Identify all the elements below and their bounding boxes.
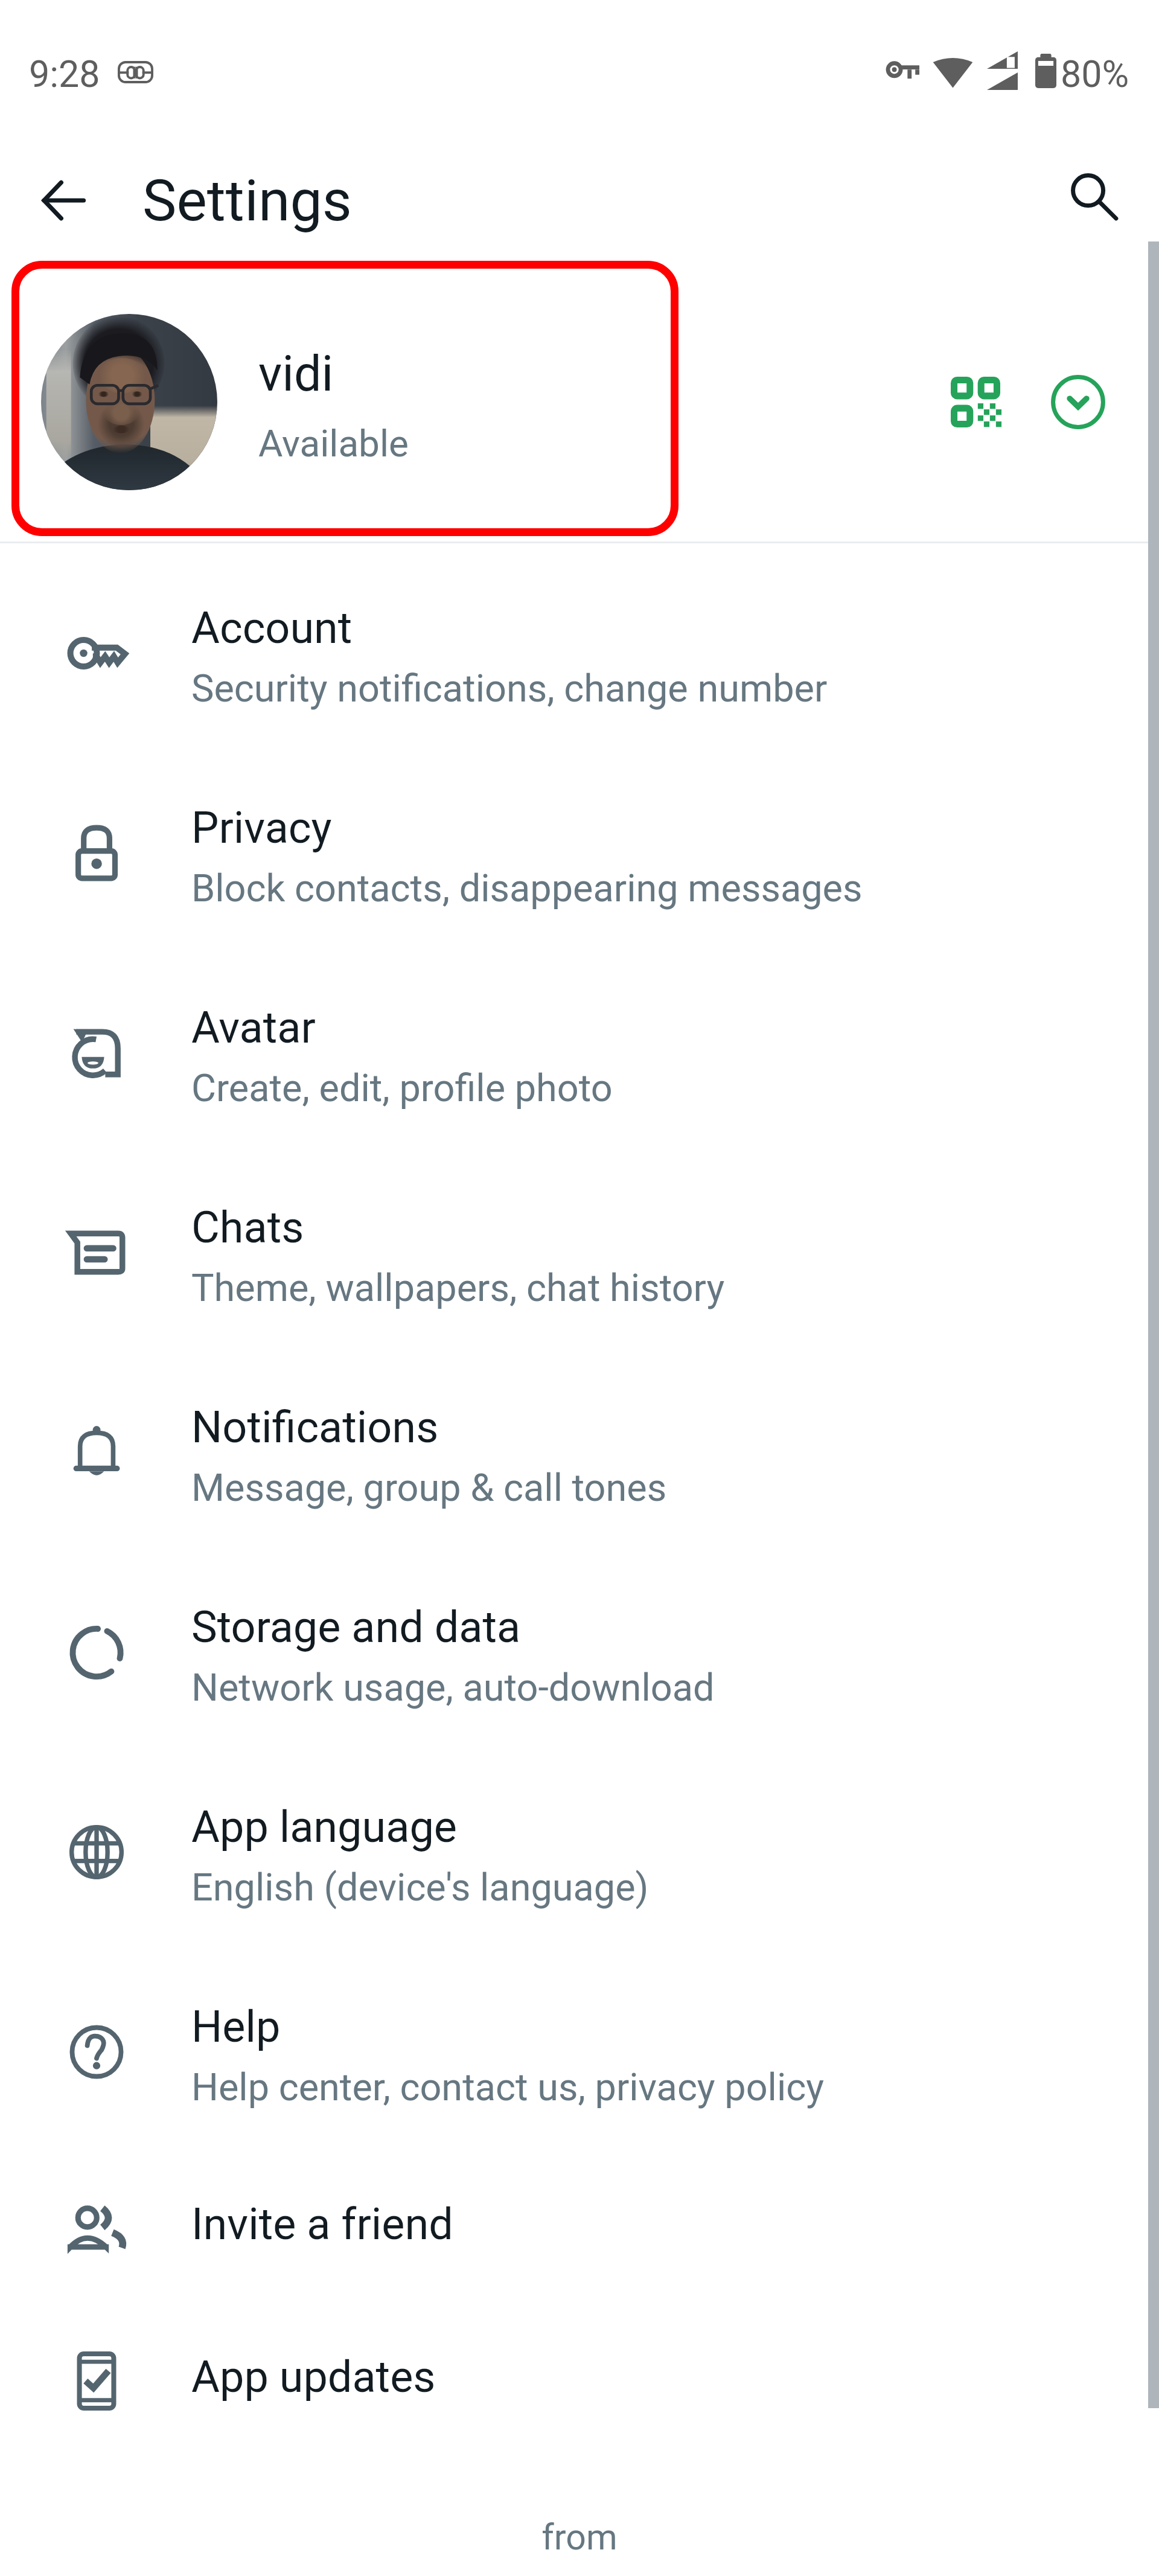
staticText: Available bbox=[258, 421, 409, 465]
staticText: from bbox=[0, 2516, 1159, 2558]
staticText: Help bbox=[191, 2001, 281, 2052]
staticText: App language bbox=[191, 1801, 458, 1852]
staticText: Chats bbox=[191, 1202, 304, 1253]
staticText: Theme, wallpapers, chat history bbox=[191, 1266, 725, 1311]
button[interactable]: App language bbox=[0, 1752, 1159, 1952]
button[interactable]: Notifications bbox=[0, 1352, 1159, 1552]
staticText: Privacy bbox=[191, 802, 332, 853]
staticText: Storage and data bbox=[191, 1602, 521, 1652]
staticText: Network usage, auto-download bbox=[191, 1666, 715, 1710]
button[interactable]: Chats bbox=[0, 1152, 1159, 1352]
staticText: Security notifications, change number bbox=[191, 666, 828, 711]
button[interactable]: Help bbox=[0, 1952, 1159, 2152]
staticText: Invite a friend bbox=[191, 2199, 453, 2249]
staticText: Notifications bbox=[191, 1402, 439, 1453]
button[interactable]: Back bbox=[23, 160, 104, 241]
staticText: Avatar bbox=[191, 1002, 316, 1053]
button[interactable]: Search bbox=[1053, 156, 1134, 237]
staticText: 80% bbox=[1061, 53, 1129, 95]
staticText: 9:28 bbox=[29, 53, 100, 95]
button[interactable]: Storage and data bbox=[0, 1552, 1159, 1752]
button[interactable]: QR code bbox=[930, 357, 1021, 447]
staticText: Settings bbox=[142, 167, 352, 234]
button[interactable]: Avatar bbox=[0, 953, 1159, 1152]
button[interactable]: Privacy bbox=[0, 753, 1159, 953]
staticText: Account bbox=[191, 602, 353, 653]
staticText: Help center, contact us, privacy policy bbox=[191, 2065, 825, 2110]
button[interactable]: vidi bbox=[0, 266, 1159, 541]
staticText: English (device's language) bbox=[191, 1865, 649, 1910]
staticText: Message, group & call tones bbox=[191, 1466, 667, 1510]
button[interactable]: App updates bbox=[0, 2304, 1159, 2457]
staticText: Block contacts, disappearing messages bbox=[191, 866, 863, 911]
staticText: vidi bbox=[258, 345, 334, 403]
staticText: App updates bbox=[191, 2351, 436, 2402]
button[interactable]: Account bbox=[0, 553, 1159, 753]
staticText: Create, edit, profile photo bbox=[191, 1066, 613, 1111]
button[interactable]: Invite a friend bbox=[0, 2152, 1159, 2304]
button[interactable]: Expand profile bbox=[1032, 356, 1124, 448]
